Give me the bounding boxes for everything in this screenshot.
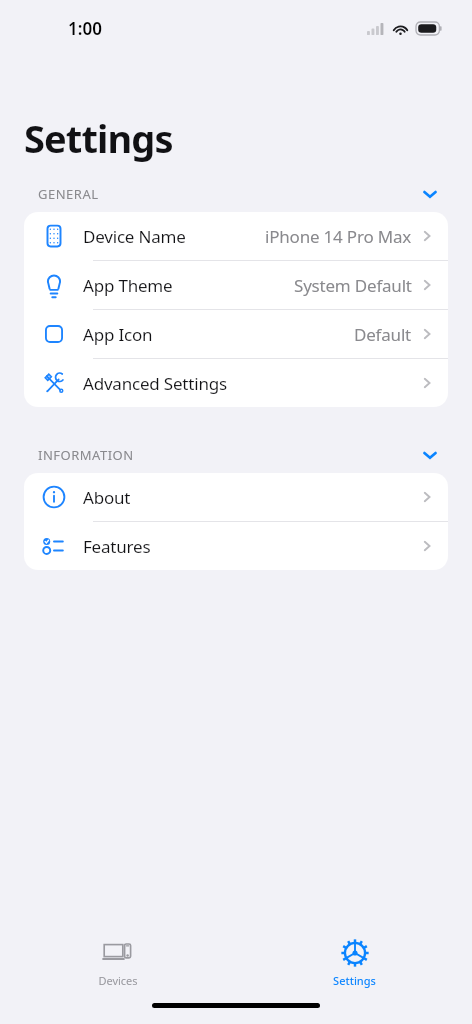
staticText: iPhone 14 Pro Max [265, 225, 412, 248]
staticText: GENERAL [38, 185, 99, 203]
staticText: System Default [294, 274, 412, 297]
staticText: About [83, 486, 131, 509]
other: Collapse section [420, 184, 440, 204]
staticText: 1:00 [68, 17, 102, 40]
staticText: Device Name [83, 225, 186, 248]
other: Devices [103, 938, 133, 968]
button[interactable]: Advanced Settings [24, 359, 448, 407]
button[interactable]: GENERAL [38, 184, 440, 204]
staticText: Settings [24, 112, 173, 164]
staticText: Features [83, 535, 151, 558]
staticText: App Icon [83, 323, 153, 346]
button[interactable]: Features [24, 522, 448, 570]
button[interactable]: App Icon [24, 310, 448, 358]
other: Collapse section [420, 445, 440, 465]
button[interactable]: About [24, 473, 448, 521]
staticText: App Theme [83, 274, 173, 297]
button[interactable]: INFORMATION [38, 445, 440, 465]
staticText: Default [354, 323, 412, 346]
button[interactable]: Settings [311, 934, 398, 992]
button[interactable]: App Theme [24, 261, 448, 309]
staticText: INFORMATION [38, 446, 134, 464]
other: Settings [340, 938, 370, 968]
staticText: Settings [333, 973, 376, 988]
staticText: Advanced Settings [83, 372, 227, 395]
button[interactable]: Devices [76, 934, 160, 992]
staticText: Devices [98, 973, 138, 988]
button[interactable]: Device Name [24, 212, 448, 260]
